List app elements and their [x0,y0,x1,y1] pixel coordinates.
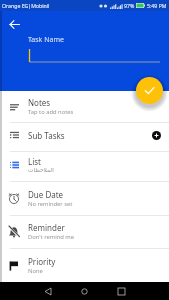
button[interactable]: Home [79,286,90,297]
staticText: Notes [28,97,51,108]
button[interactable]: Priority [0,248,169,282]
button[interactable]: Save task [136,77,163,104]
button[interactable]: Notes [0,91,169,122]
button[interactable]: Add sub task [152,131,161,140]
button[interactable]: Recents [116,286,127,297]
staticText: None [28,267,43,275]
button[interactable]: Sub Tasks [0,122,169,148]
button[interactable]: Reminder [0,215,169,248]
staticText: الملاحظات [28,167,54,174]
staticText: Don't remind me [28,233,74,241]
button[interactable]: Due Date [0,181,169,215]
button[interactable]: Back [42,286,53,297]
staticText: Due Date [28,189,64,200]
staticText: Tap to add notes [28,108,74,116]
staticText: List [28,156,41,167]
staticText: 97% [124,2,135,9]
staticText: 5:49 PM [147,2,167,9]
button[interactable]: Back [6,16,23,33]
staticText: Priority [28,256,56,267]
staticText: Orange EG|Mobinil [2,2,50,9]
button[interactable]: List [0,151,169,178]
staticText: No reminder set [28,200,73,208]
staticText: Reminder [28,222,65,233]
staticText: Task Name [28,35,64,45]
staticText: Sub Tasks [28,130,65,141]
